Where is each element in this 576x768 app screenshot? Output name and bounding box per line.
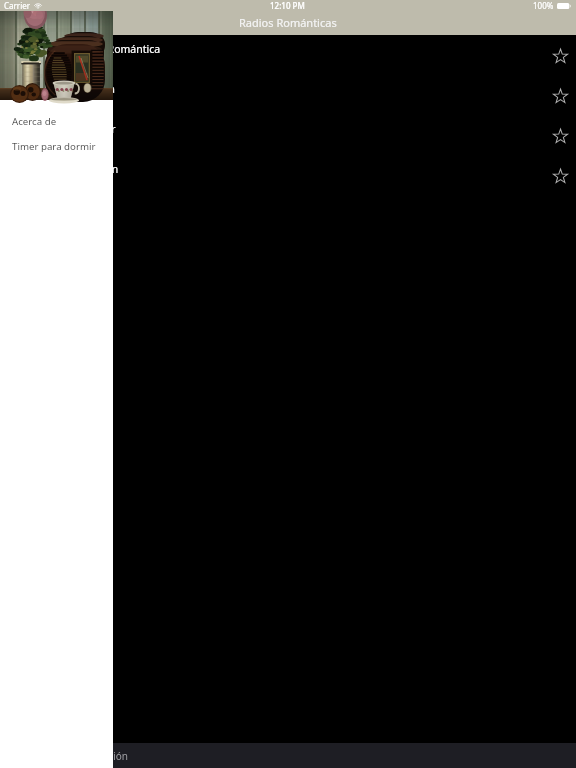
button[interactable]: Favorite	[548, 124, 572, 148]
staticText: Radio Latina Amor Romántica	[14, 42, 161, 56]
staticText: Melodía Suave Amor	[14, 122, 116, 136]
staticText: Radio Dulce Melodía	[14, 82, 115, 96]
button[interactable]: Timer para dormir	[0, 134, 113, 159]
button[interactable]: Radio Latina Amor Romántica	[0, 35, 576, 75]
staticText: Stereo Amor Canción	[14, 162, 119, 176]
staticText: Acerca de	[12, 115, 57, 128]
button[interactable]: Radio Dulce Melodía	[0, 75, 576, 115]
staticText: 12:10 PM	[270, 0, 305, 11]
staticText: Radios Románticas	[239, 15, 337, 30]
button[interactable]: Favorite	[548, 164, 572, 188]
button[interactable]: Favorite	[548, 44, 572, 68]
button[interactable]: Detener la reproducción	[0, 743, 576, 768]
staticText: Detener la reproducción	[14, 749, 128, 763]
staticText: Carrier	[4, 0, 31, 11]
button[interactable]: Melodía Suave Amor	[0, 115, 576, 155]
button[interactable]: Favorite	[548, 84, 572, 108]
button[interactable]: Stereo Amor Canción	[0, 155, 576, 195]
button[interactable]: Acerca de	[0, 109, 113, 134]
staticText: Timer para dormir	[12, 140, 96, 153]
staticText: 100%	[533, 0, 554, 11]
